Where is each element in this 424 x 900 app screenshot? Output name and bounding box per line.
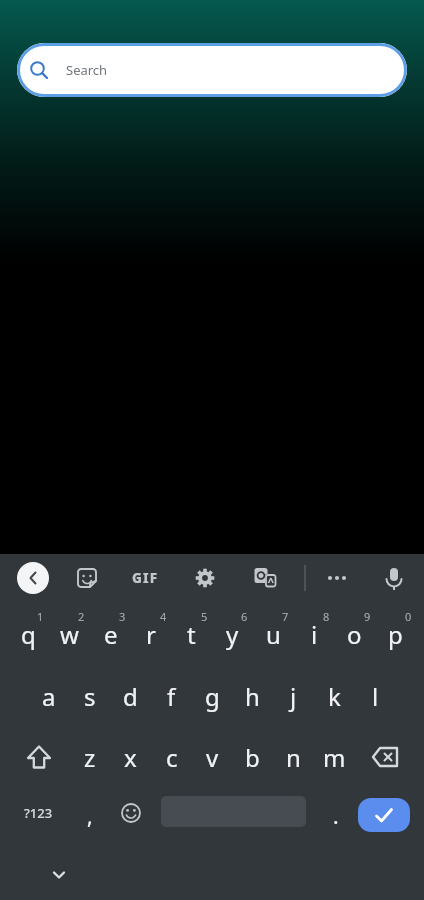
button[interactable] [374, 558, 414, 598]
button[interactable]: d [110, 666, 151, 727]
button[interactable]: r [130, 604, 171, 665]
staticText: b [245, 741, 260, 774]
button[interactable] [358, 798, 410, 832]
staticText: g [205, 680, 220, 713]
button[interactable]: k [314, 666, 355, 727]
button[interactable] [8, 726, 69, 787]
staticText: a [42, 680, 56, 713]
staticText: n [286, 741, 301, 774]
staticText: i [311, 618, 318, 651]
staticText: o [347, 618, 362, 651]
staticText: d [123, 680, 138, 713]
staticText: y [226, 618, 239, 651]
button[interactable]: j [273, 666, 314, 727]
button[interactable] [39, 855, 79, 895]
staticText: 0 [405, 609, 412, 624]
staticText: s [84, 680, 96, 713]
button[interactable]: g [192, 666, 233, 727]
button[interactable]: u [253, 604, 294, 665]
staticText: r [146, 618, 156, 651]
button[interactable]: w [49, 604, 90, 665]
button[interactable]: c [151, 727, 192, 788]
staticText: 1 [37, 609, 44, 624]
staticText: z [84, 741, 96, 774]
button[interactable]: y [212, 604, 253, 665]
staticText: k [328, 680, 341, 713]
button[interactable]: Search [17, 43, 407, 97]
staticText: 8 [323, 609, 330, 624]
staticText: 7 [282, 609, 289, 624]
staticText: h [245, 680, 260, 713]
staticText: c [166, 741, 178, 774]
button[interactable]: b [232, 727, 273, 788]
staticText: x [124, 741, 137, 774]
button[interactable]: l [355, 666, 396, 727]
button[interactable]: s [69, 666, 110, 727]
staticText: ?123 [24, 804, 53, 822]
button[interactable]: q [8, 604, 49, 665]
staticText: , [87, 802, 93, 831]
staticText: GIF [132, 569, 159, 587]
button[interactable]: f [151, 666, 192, 727]
button[interactable]: v [192, 727, 233, 788]
button[interactable] [67, 558, 107, 598]
staticText: 6 [241, 609, 248, 624]
staticText: 2 [78, 609, 85, 624]
button[interactable]: p [375, 604, 416, 665]
button[interactable]: h [232, 666, 273, 727]
button[interactable]: GIF [123, 558, 167, 598]
button[interactable]: z [69, 727, 110, 788]
staticText: m [323, 741, 346, 774]
staticText: j [290, 680, 297, 713]
button[interactable] [185, 558, 225, 598]
staticText: 4 [160, 609, 167, 624]
staticText: e [104, 618, 118, 651]
staticText: Search [66, 61, 108, 79]
staticText: . [333, 802, 339, 831]
button[interactable]: t [171, 604, 212, 665]
staticText: u [266, 618, 281, 651]
button[interactable] [245, 558, 285, 598]
button[interactable]: , [69, 786, 110, 847]
button[interactable]: o [334, 604, 375, 665]
button[interactable] [317, 558, 357, 598]
button[interactable] [355, 726, 416, 787]
staticText: 5 [201, 609, 208, 624]
button[interactable]: a [28, 666, 69, 727]
button[interactable] [17, 562, 49, 594]
button[interactable]: e [90, 604, 131, 665]
staticText: p [388, 618, 403, 651]
staticText: f [167, 680, 176, 713]
button[interactable]: i [294, 604, 335, 665]
button[interactable]: . [315, 786, 356, 847]
button[interactable]: x [110, 727, 151, 788]
staticText: v [206, 741, 219, 774]
button[interactable]: ?123 [13, 782, 64, 843]
button[interactable]: m [314, 727, 355, 788]
staticText: w [60, 618, 79, 651]
staticText: 9 [364, 609, 371, 624]
staticText: 3 [119, 609, 126, 624]
button[interactable]: n [273, 727, 314, 788]
staticText: l [372, 680, 379, 713]
button[interactable] [110, 782, 151, 843]
staticText: q [21, 618, 36, 651]
staticText: t [187, 618, 196, 651]
